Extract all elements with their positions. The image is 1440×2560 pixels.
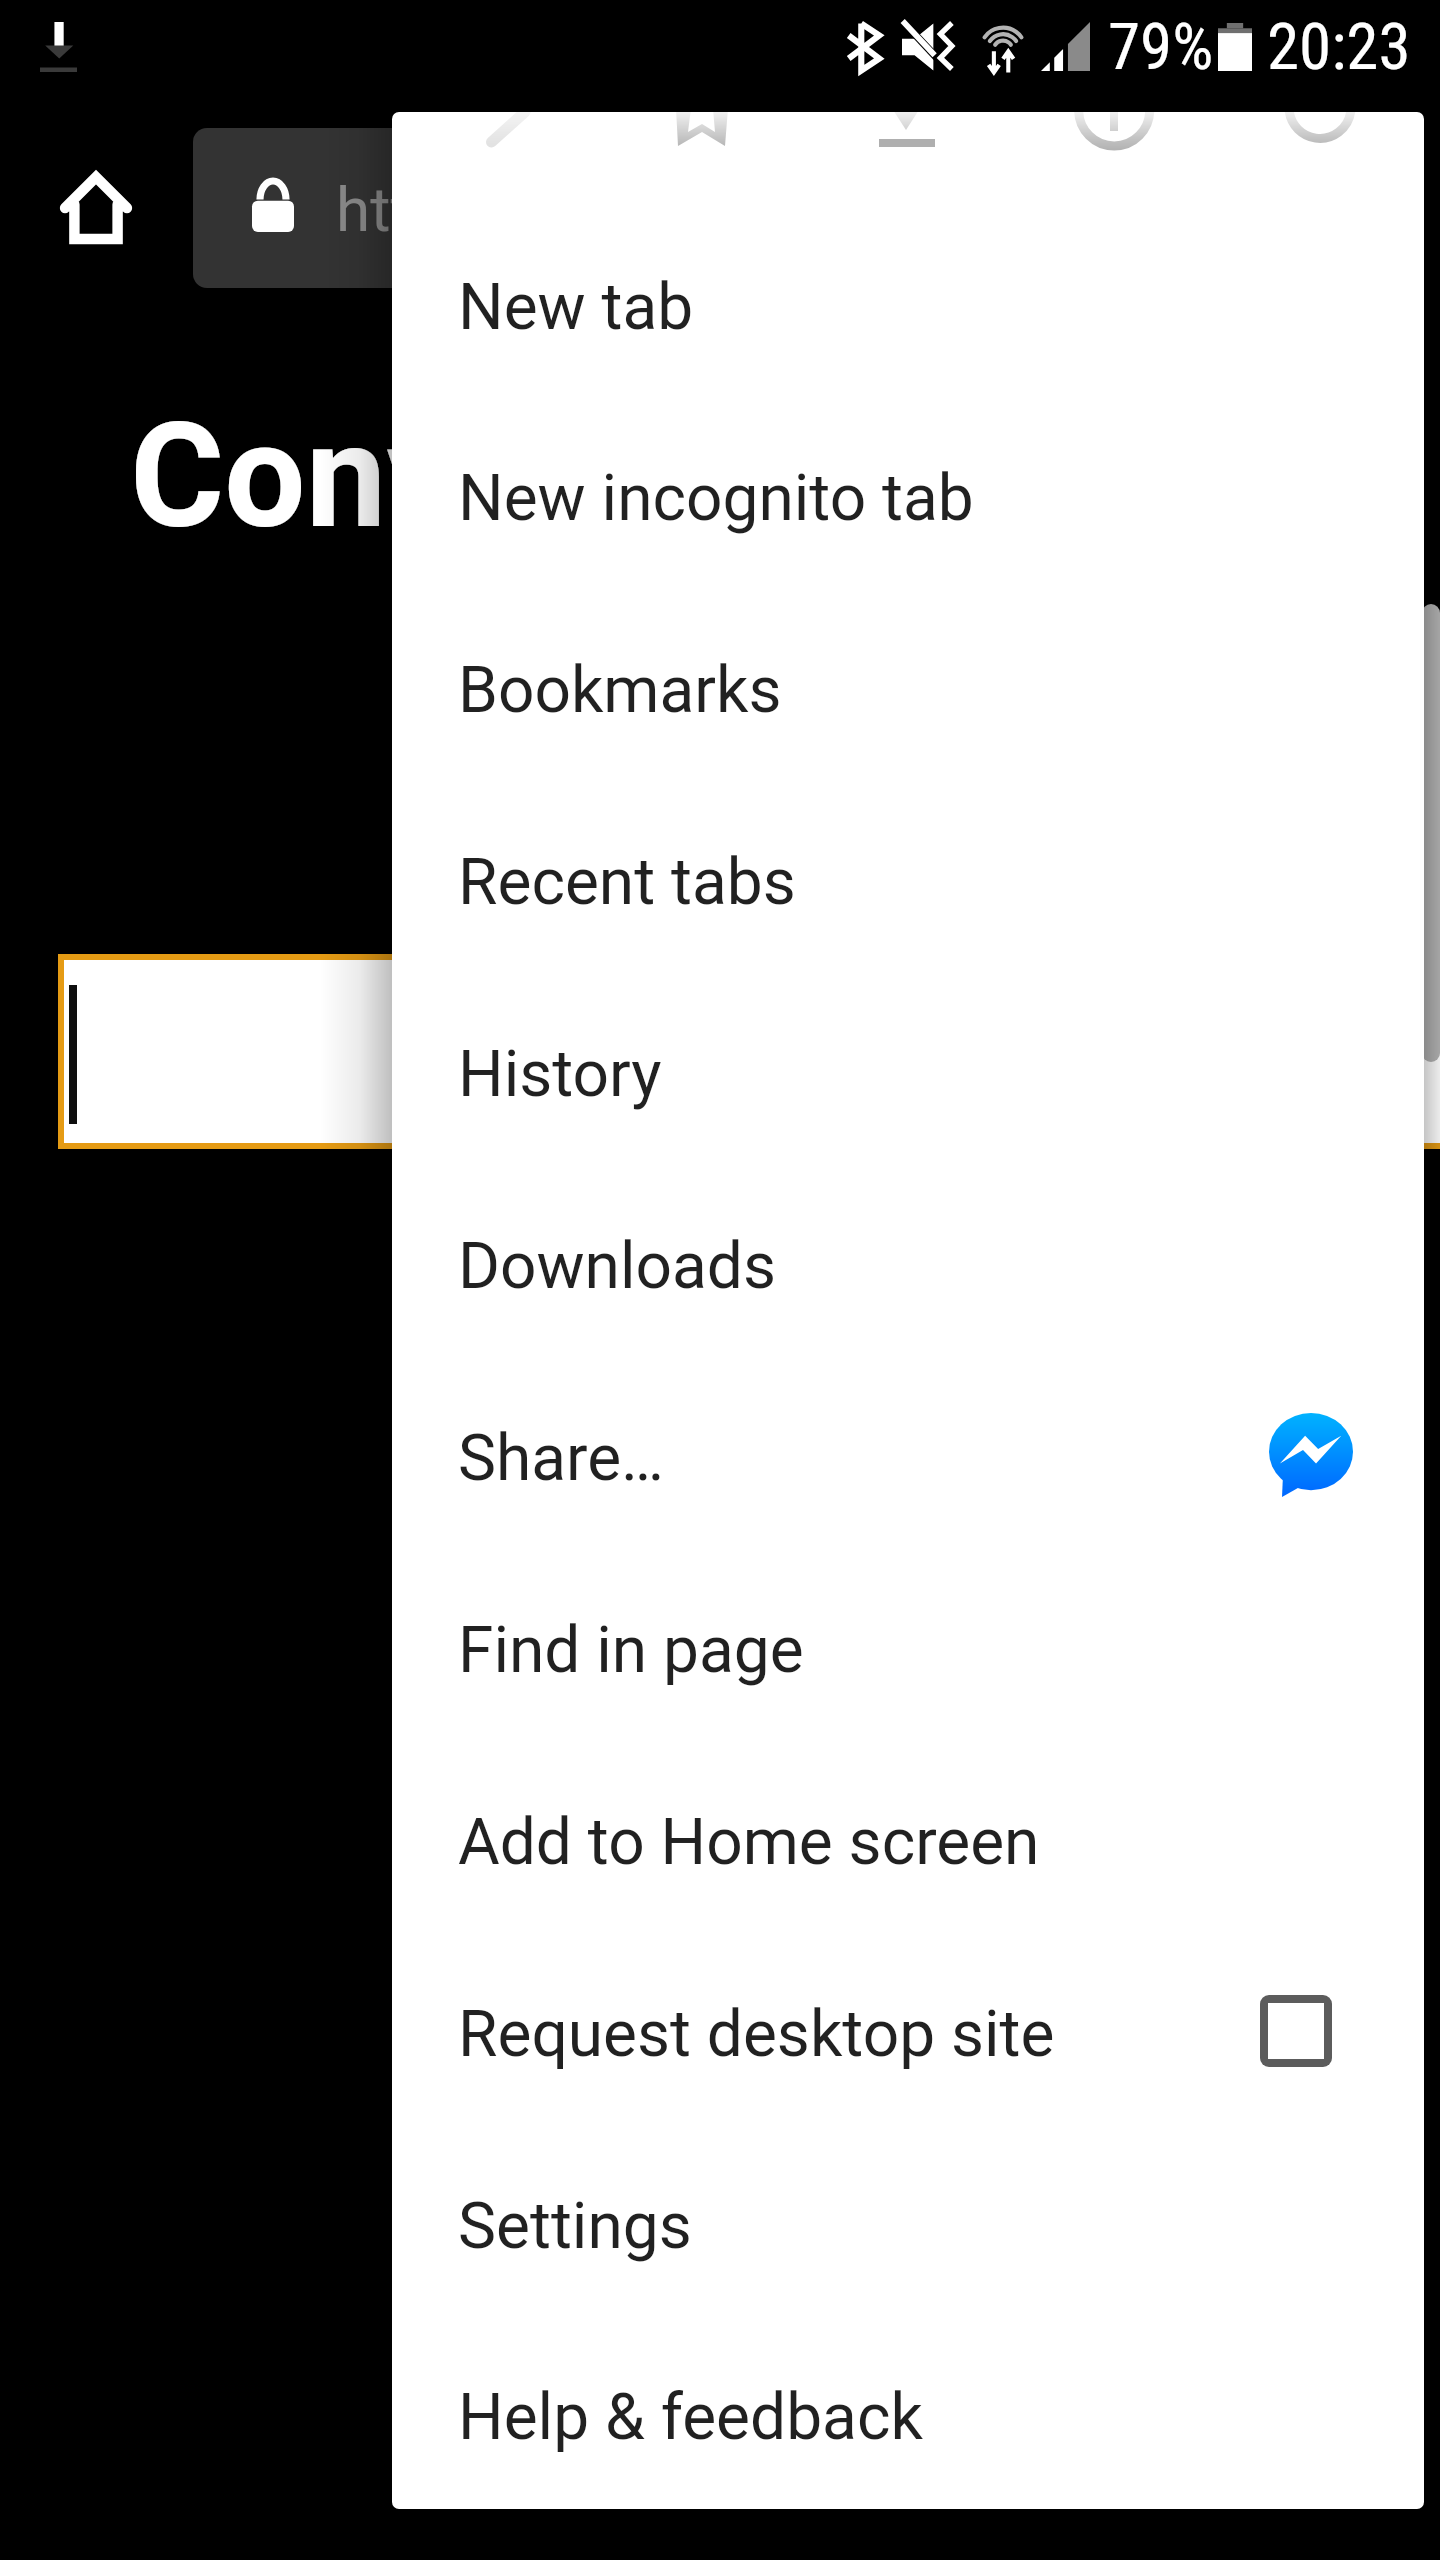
button[interactable]: Add to Home screen bbox=[392, 1743, 1424, 1935]
staticText: 79% bbox=[1108, 9, 1214, 85]
button[interactable]: New tab bbox=[392, 208, 1424, 400]
button[interactable]: Forward bbox=[436, 112, 580, 158]
button[interactable]: Page info bbox=[1042, 112, 1186, 158]
button[interactable]: https://www.convertworld.com bbox=[193, 128, 1013, 288]
button[interactable]: Bookmarks bbox=[392, 591, 1424, 783]
staticText: History bbox=[458, 1037, 662, 1112]
button[interactable]: Settings bbox=[392, 2127, 1424, 2319]
staticText: Downloads bbox=[458, 1229, 776, 1304]
button[interactable]: Download page bbox=[835, 112, 979, 158]
staticText: Request desktop site bbox=[458, 1997, 1055, 2072]
button[interactable]: Reload bbox=[1248, 112, 1392, 158]
staticText: New tab bbox=[458, 270, 694, 345]
button[interactable]: New incognito tab bbox=[392, 399, 1424, 591]
staticText: Settings bbox=[458, 2189, 692, 2264]
button[interactable]: Request desktop site bbox=[392, 1935, 1424, 2127]
staticText: Converter bbox=[130, 392, 772, 561]
staticText: Recent tabs bbox=[458, 845, 796, 920]
button[interactable] bbox=[64, 960, 1440, 1143]
button[interactable]: Bookmark bbox=[630, 112, 774, 158]
button[interactable]: Home bbox=[24, 136, 168, 280]
staticText: Share… bbox=[458, 1421, 664, 1496]
button[interactable]: History bbox=[392, 975, 1424, 1167]
button[interactable]: Downloads bbox=[392, 1167, 1424, 1359]
button[interactable]: Share… bbox=[392, 1359, 1424, 1551]
staticText: Find in page bbox=[458, 1613, 804, 1688]
staticText: Add to Home screen bbox=[458, 1805, 1040, 1880]
button[interactable]: Help & feedback bbox=[392, 2318, 1424, 2509]
button[interactable]: Recent tabs bbox=[392, 783, 1424, 975]
staticText: Bookmarks bbox=[458, 653, 782, 728]
staticText: New incognito tab bbox=[458, 461, 974, 536]
button[interactable]: Find in page bbox=[392, 1551, 1424, 1743]
staticText: Help & feedback bbox=[458, 2380, 923, 2455]
staticText: 20:23 bbox=[1267, 9, 1411, 85]
staticText: https://www.convertworld.com bbox=[336, 173, 1013, 246]
